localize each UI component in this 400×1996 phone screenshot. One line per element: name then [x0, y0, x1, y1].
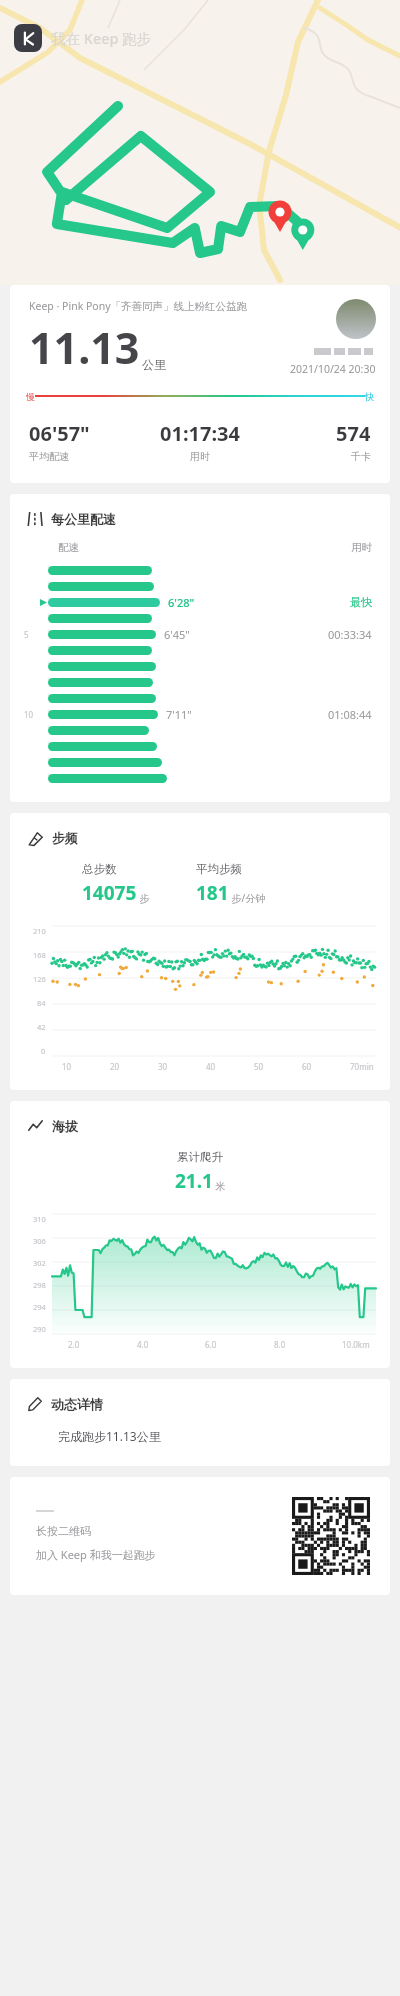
staticText: 306	[33, 1236, 46, 1246]
staticText: 用时	[351, 541, 372, 554]
staticText: 40	[206, 1061, 216, 1072]
staticText: 慢	[26, 391, 35, 402]
staticText: 最快	[350, 595, 372, 609]
staticText: 8.0	[274, 1339, 286, 1350]
staticText: 加入 Keep 和我一起跑步	[36, 1547, 156, 1562]
staticText: 7'11"	[166, 707, 192, 722]
staticText: 10	[24, 709, 34, 720]
staticText: 0	[41, 1046, 46, 1056]
staticText: 动态详情	[51, 1396, 103, 1412]
staticText: 2.0	[68, 1339, 80, 1350]
staticText: 302	[33, 1258, 46, 1268]
staticText: 210	[33, 926, 46, 936]
staticText: 长按二维码	[36, 1524, 91, 1538]
staticText: Keep · Pink Pony「齐善同声」线上粉红公益跑	[29, 299, 248, 313]
staticText: 01:17:34	[160, 420, 240, 447]
button[interactable]: Keep	[14, 24, 152, 52]
other: Avatar	[336, 299, 376, 339]
staticText: 6'45"	[164, 627, 190, 642]
staticText: 310	[33, 1214, 46, 1224]
staticText: 06'57"	[29, 420, 90, 447]
staticText: 60	[302, 1061, 312, 1072]
staticText: 总步数	[82, 862, 117, 876]
staticText: 每公里配速	[51, 511, 116, 527]
staticText: 我在 Keep 跑步	[51, 28, 152, 48]
button[interactable]: 海拔	[10, 1101, 390, 1368]
staticText: 84	[37, 998, 46, 1008]
other: Keep	[14, 24, 42, 52]
staticText: 294	[33, 1302, 46, 1312]
button[interactable]: 动态详情	[10, 1379, 390, 1466]
button[interactable]: Keep · Pink Pony「齐善同声」线上粉红公益跑	[10, 285, 390, 483]
staticText: 290	[33, 1324, 46, 1334]
staticText: 70min	[350, 1061, 374, 1072]
staticText: 574	[336, 420, 371, 447]
staticText: 01:08:44	[328, 707, 372, 722]
staticText: 168	[33, 950, 46, 960]
staticText: 配速	[58, 541, 79, 554]
staticText: 00:33:34	[328, 627, 372, 642]
other: QR code	[292, 1497, 370, 1575]
staticText: 10.0km	[342, 1339, 370, 1350]
staticText: 10	[62, 1061, 72, 1072]
staticText: 步/分钟	[229, 891, 266, 905]
staticText: 快	[365, 391, 374, 402]
staticText: 42	[37, 1022, 46, 1032]
staticText: 20	[110, 1061, 120, 1072]
staticText: 米	[213, 1179, 226, 1193]
button[interactable]: 长按二维码	[10, 1477, 390, 1595]
staticText: 6'28"	[168, 595, 195, 610]
staticText: 完成跑步11.13公里	[58, 1428, 161, 1444]
staticText: 126	[33, 974, 46, 984]
staticText: 30	[158, 1061, 168, 1072]
staticText: 298	[33, 1280, 46, 1290]
button[interactable]: 步频	[10, 813, 390, 1090]
staticText: 累计爬升	[177, 1150, 223, 1164]
staticText: 50	[254, 1061, 264, 1072]
staticText: 2021/10/24 20:30	[290, 362, 376, 376]
staticText: 6.0	[205, 1339, 217, 1350]
button[interactable]: 每公里配速	[10, 494, 390, 802]
staticText: 平均配速	[29, 450, 69, 463]
staticText: 平均步频	[196, 862, 242, 876]
staticText: 5	[24, 629, 29, 640]
staticText: 海拔	[52, 1118, 78, 1134]
staticText: 11.13	[29, 318, 140, 377]
staticText: 4.0	[137, 1339, 149, 1350]
staticText: 步频	[52, 830, 78, 846]
staticText: 千卡	[351, 450, 371, 463]
staticText: 14075	[82, 880, 137, 906]
staticText: 21.1	[175, 1168, 213, 1194]
staticText: 用时	[190, 450, 210, 463]
staticText: 181	[196, 880, 229, 906]
staticText: 公里	[142, 357, 166, 372]
staticText: 步	[137, 891, 150, 905]
